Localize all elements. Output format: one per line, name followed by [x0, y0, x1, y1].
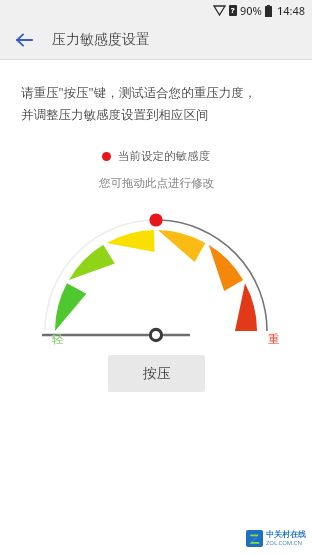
button[interactable]: Back	[8, 24, 40, 56]
staticText: ?	[231, 6, 235, 16]
staticText: 压力敏感度设置	[52, 31, 150, 49]
staticText: 请重压"按压"键，测试适合您的重压力度，	[21, 84, 257, 101]
staticText: 重	[268, 332, 280, 346]
staticText: ZOL.COM.CN	[266, 539, 302, 547]
staticText: 轻	[52, 332, 64, 346]
staticText: 并调整压力敏感度设置到相应区间	[21, 107, 209, 123]
staticText: 14:48	[277, 3, 306, 18]
staticText: 90%	[240, 3, 262, 18]
button[interactable]: 按压	[108, 355, 205, 392]
staticText: 按压	[143, 365, 171, 383]
staticText: 当前设定的敏感度	[118, 149, 210, 163]
staticText: 您可拖动此点进行修改	[99, 176, 214, 190]
staticText: 中关村在线	[266, 529, 306, 539]
